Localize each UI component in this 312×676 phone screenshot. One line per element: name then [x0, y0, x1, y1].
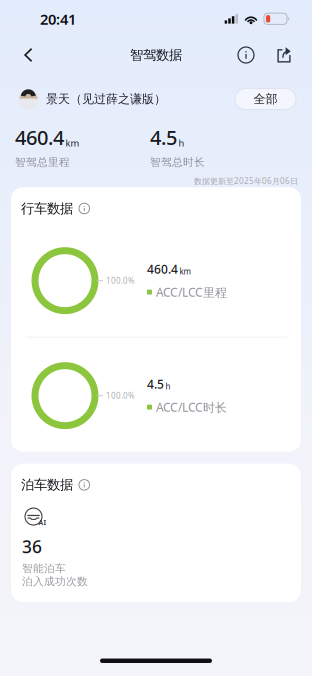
staticText: 泊入成功次数	[22, 575, 88, 588]
staticText: 智驾总时长	[150, 156, 205, 169]
staticText: 460.4	[15, 124, 64, 151]
staticText: 100.0%	[106, 275, 135, 286]
staticText: 智驾总里程	[15, 156, 70, 169]
staticText: 景天（见过薛之谦版）	[46, 92, 166, 106]
staticText: 460.4	[147, 261, 178, 277]
staticText: 泊车数据	[21, 477, 73, 493]
staticText: 100.0%	[106, 390, 135, 401]
staticText: km	[65, 137, 79, 149]
staticText: ACC/LCC时长	[156, 399, 227, 415]
staticText: h	[165, 381, 170, 392]
staticText: 智驾数据	[130, 47, 182, 63]
staticText: 智能泊车	[22, 562, 66, 575]
staticText: 4.5	[150, 124, 177, 151]
staticText: 行车数据	[21, 200, 73, 217]
staticText: 数据更新至2025年06月06日	[194, 176, 298, 186]
staticText: 4.5	[147, 376, 164, 392]
staticText: 36	[22, 535, 42, 558]
button[interactable]: 全部	[235, 88, 296, 109]
staticText: ACC/LCC里程	[156, 284, 227, 300]
staticText: 全部	[253, 92, 277, 106]
button[interactable]: Back	[8, 40, 48, 70]
staticText: AI	[38, 518, 46, 527]
staticText: km	[179, 266, 190, 277]
button[interactable]: Share	[269, 40, 299, 70]
button[interactable]: Info	[231, 40, 261, 70]
staticText: 20:41	[40, 9, 76, 29]
staticText: h	[178, 137, 184, 149]
